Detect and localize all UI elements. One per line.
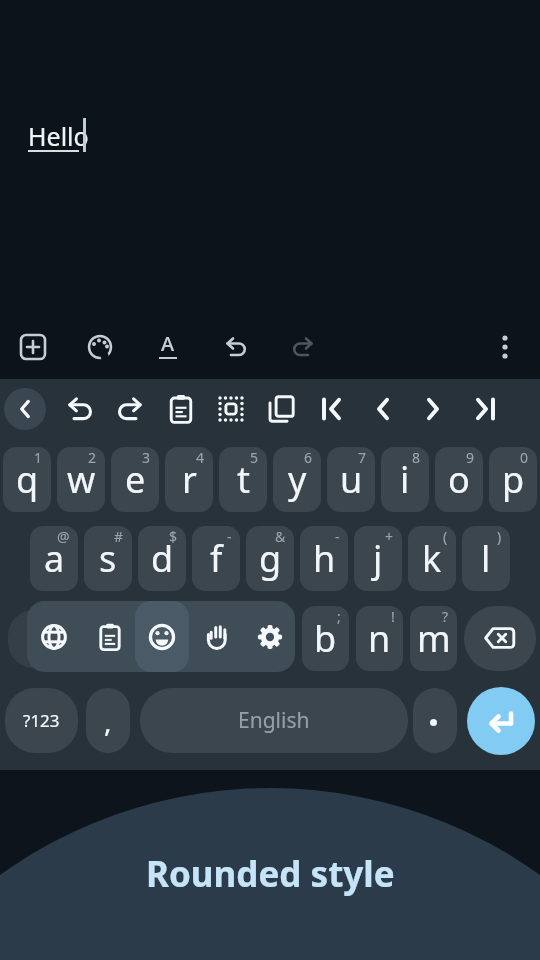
button[interactable]: e	[111, 447, 159, 512]
button[interactable]: o	[435, 447, 483, 512]
staticText: i	[400, 455, 410, 504]
staticText: #	[114, 527, 124, 546]
button[interactable]: ?123	[5, 688, 78, 753]
button[interactable]	[78, 325, 122, 369]
staticText: 8	[412, 448, 421, 467]
button[interactable]: q	[3, 447, 51, 512]
staticText: s	[99, 534, 117, 583]
button[interactable]	[209, 387, 253, 431]
button[interactable]: r	[165, 447, 213, 512]
staticText: ,	[104, 702, 112, 740]
button[interactable]	[248, 615, 292, 659]
button[interactable]: w	[57, 447, 105, 512]
button[interactable]	[259, 387, 303, 431]
staticText: 6	[304, 448, 313, 467]
button[interactable]: A	[146, 325, 190, 369]
staticText: o	[448, 455, 470, 504]
button[interactable]: p	[489, 447, 537, 512]
staticText: ;	[337, 607, 341, 626]
button[interactable]: u	[327, 447, 375, 512]
staticText: p	[502, 455, 525, 504]
staticText: h	[313, 534, 336, 583]
button[interactable]: s	[84, 526, 132, 591]
button[interactable]	[478, 616, 522, 660]
button[interactable]: m	[410, 606, 457, 671]
staticText: j	[373, 534, 383, 583]
button[interactable]	[196, 615, 240, 659]
staticText: 2	[88, 448, 97, 467]
staticText: q	[16, 455, 39, 504]
button[interactable]	[58, 387, 102, 431]
button[interactable]	[467, 687, 535, 755]
staticText: 5	[250, 448, 259, 467]
button[interactable]: k	[408, 526, 456, 591]
staticText: 0	[520, 448, 529, 467]
button[interactable]: f	[192, 526, 240, 591]
staticText: A	[161, 330, 175, 357]
staticText: 1	[34, 448, 43, 467]
button[interactable]	[135, 601, 189, 672]
staticText: -	[227, 527, 232, 546]
button[interactable]	[108, 387, 152, 431]
button[interactable]: h	[300, 526, 348, 591]
button[interactable]: l	[462, 526, 510, 591]
staticText: @	[57, 527, 70, 546]
staticText: m	[417, 614, 451, 663]
staticText: a	[44, 534, 65, 583]
staticText: (	[443, 527, 448, 546]
button[interactable]	[281, 325, 325, 369]
staticText: ?	[442, 607, 449, 626]
button[interactable]: English	[140, 688, 408, 753]
staticText: t	[237, 455, 250, 504]
button[interactable]: a	[30, 526, 78, 591]
staticText: 3	[142, 448, 151, 467]
staticText: n	[368, 614, 391, 663]
staticText: r	[182, 455, 197, 504]
button[interactable]	[11, 325, 55, 369]
staticText: k	[422, 534, 442, 583]
staticText: 7	[358, 448, 367, 467]
staticText: y	[288, 455, 307, 504]
staticText: e	[125, 455, 146, 504]
button[interactable]	[411, 387, 455, 431]
button[interactable]	[311, 387, 355, 431]
staticText: w	[67, 455, 96, 504]
button[interactable]: y	[273, 447, 321, 512]
staticText: Hello	[28, 119, 89, 153]
staticText: +	[385, 527, 394, 546]
button[interactable]: d	[138, 526, 186, 591]
staticText: -	[335, 527, 340, 546]
staticText: 9	[466, 448, 475, 467]
staticText: Rounded style	[146, 850, 395, 898]
button[interactable]: b	[302, 606, 349, 671]
staticText: l	[481, 534, 491, 583]
staticText: b	[314, 614, 337, 663]
button[interactable]: t	[219, 447, 267, 512]
button[interactable]	[483, 325, 527, 369]
staticText: ?123	[23, 709, 60, 732]
button[interactable]	[462, 387, 506, 431]
button[interactable]: n	[356, 606, 403, 671]
button[interactable]	[464, 606, 536, 671]
button[interactable]	[32, 615, 76, 659]
button[interactable]	[27, 601, 295, 672]
button[interactable]	[4, 388, 46, 430]
button[interactable]	[361, 387, 405, 431]
staticText: $	[169, 527, 178, 546]
staticText: d	[151, 534, 174, 583]
button[interactable]: i	[381, 447, 429, 512]
staticText: 4	[196, 448, 205, 467]
button[interactable]	[159, 387, 203, 431]
staticText: u	[340, 455, 363, 504]
staticText: f	[210, 534, 223, 583]
button[interactable]	[140, 615, 184, 659]
staticText: English	[238, 706, 310, 735]
button[interactable]	[88, 615, 132, 659]
button[interactable]	[413, 688, 457, 753]
button[interactable]: g	[246, 526, 294, 591]
button[interactable]: ,	[86, 688, 130, 753]
staticText: &	[275, 527, 286, 546]
button[interactable]: j	[354, 526, 402, 591]
button[interactable]	[214, 325, 258, 369]
staticText: )	[497, 527, 502, 546]
